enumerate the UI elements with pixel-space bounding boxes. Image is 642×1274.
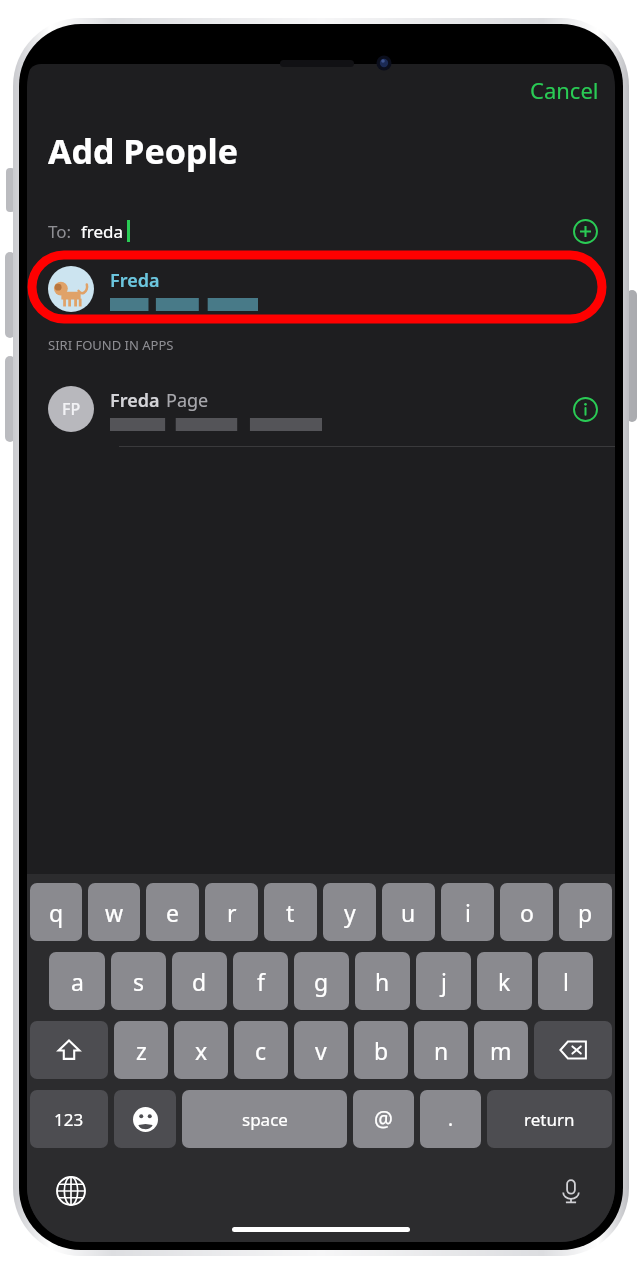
staticText: k <box>498 966 511 997</box>
button[interactable]: m <box>474 1021 528 1079</box>
staticText: e <box>166 897 179 928</box>
button[interactable]: b <box>354 1021 408 1079</box>
button[interactable]: o <box>500 883 553 941</box>
staticText: l <box>563 966 569 997</box>
button[interactable]: x <box>174 1021 228 1079</box>
button[interactable]: . <box>420 1090 481 1148</box>
button[interactable]: v <box>294 1021 348 1079</box>
staticText: y <box>344 897 356 928</box>
button[interactable]: q <box>30 883 82 941</box>
button[interactable]: Dictate <box>549 1169 593 1213</box>
staticText: b <box>374 1035 389 1066</box>
staticText: f <box>257 966 265 997</box>
staticText: i <box>465 897 471 928</box>
button[interactable]: t <box>264 883 317 941</box>
button[interactable]: z <box>114 1021 168 1079</box>
staticText: d <box>192 966 207 997</box>
staticText: a <box>71 966 84 997</box>
staticText: SIRI FOUND IN APPS <box>48 336 174 354</box>
button[interactable]: j <box>416 952 471 1010</box>
staticText: Freda <box>110 268 160 293</box>
button[interactable]: More info <box>563 387 607 431</box>
button[interactable]: Cancel <box>514 69 615 111</box>
staticText: o <box>520 897 534 928</box>
staticText: m <box>490 1035 512 1066</box>
button[interactable]: l <box>538 952 593 1010</box>
button[interactable]: @ <box>353 1090 414 1148</box>
button[interactable]: r <box>205 883 258 941</box>
button[interactable]: p <box>559 883 612 941</box>
staticText: u <box>401 897 416 928</box>
button[interactable]: e <box>146 883 199 941</box>
button[interactable]: g <box>294 952 349 1010</box>
staticText: s <box>133 966 145 997</box>
button[interactable]: Backspace <box>534 1021 612 1079</box>
staticText: t <box>286 897 295 928</box>
button[interactable]: space <box>182 1090 347 1148</box>
staticText: h <box>375 966 390 997</box>
staticText: w <box>105 897 124 928</box>
button[interactable]: c <box>234 1021 288 1079</box>
button[interactable]: To: <box>27 210 615 252</box>
staticText: q <box>49 897 64 928</box>
staticText: . <box>448 1106 454 1132</box>
button[interactable]: s <box>111 952 166 1010</box>
staticText: Cancel <box>530 75 599 105</box>
staticText: Add People <box>48 128 238 174</box>
button[interactable]: return <box>487 1090 612 1148</box>
staticText: v <box>315 1035 327 1066</box>
staticText: space <box>242 1108 288 1131</box>
button[interactable]: n <box>414 1021 468 1079</box>
button[interactable]: 123 <box>30 1090 108 1148</box>
button[interactable]: w <box>88 883 140 941</box>
button[interactable]: Freda <box>27 252 615 326</box>
staticText: x <box>195 1035 208 1066</box>
staticText: To: <box>48 220 72 243</box>
staticText: c <box>255 1035 267 1066</box>
button[interactable]: y <box>323 883 376 941</box>
staticText: Freda <box>110 388 160 413</box>
button[interactable]: Emoji <box>114 1090 176 1148</box>
staticText: 123 <box>54 1108 84 1131</box>
staticText: j <box>441 966 447 997</box>
button[interactable]: Change keyboard language <box>49 1169 93 1213</box>
button[interactable]: k <box>477 952 532 1010</box>
staticText: n <box>434 1035 449 1066</box>
staticText: r <box>227 897 237 928</box>
staticText: return <box>524 1108 575 1131</box>
button[interactable]: Add contact <box>563 210 607 252</box>
button[interactable]: d <box>172 952 227 1010</box>
button[interactable]: u <box>382 883 435 941</box>
button[interactable]: h <box>355 952 410 1010</box>
staticText: g <box>314 966 329 997</box>
button[interactable]: f <box>233 952 288 1010</box>
staticText: z <box>136 1035 147 1066</box>
staticText: freda <box>81 220 124 243</box>
button[interactable]: Shift <box>30 1021 108 1079</box>
staticText: FP <box>62 398 81 420</box>
staticText: Page <box>166 388 209 413</box>
button[interactable]: FP <box>27 372 615 446</box>
button[interactable]: i <box>441 883 494 941</box>
staticText: @ <box>374 1105 393 1134</box>
staticText: p <box>578 897 593 928</box>
button[interactable]: a <box>49 952 105 1010</box>
